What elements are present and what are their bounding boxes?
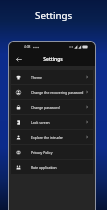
staticText: Theme [31, 75, 42, 80]
button[interactable]: Rate application [11, 160, 93, 174]
staticText: Lock screen [31, 120, 50, 125]
button[interactable]: Back [13, 54, 24, 65]
button[interactable]: Change the recovering password [11, 85, 93, 99]
staticText: Rate application [31, 165, 57, 170]
button[interactable]: Privacy Policy [11, 145, 93, 159]
button[interactable]: Lock screen [11, 115, 93, 129]
button[interactable]: Explore the intruder [11, 130, 93, 144]
button[interactable]: Change password [11, 100, 93, 114]
staticText: Settings [43, 56, 63, 63]
staticText: Settings [35, 9, 73, 22]
staticText: Change the recovering password [31, 90, 84, 95]
staticText: Change password [31, 105, 60, 110]
button[interactable]: Theme [11, 70, 93, 84]
staticText: Explore the intruder [31, 135, 64, 140]
staticText: Privacy Policy [31, 150, 53, 155]
staticText: 4:08 [24, 45, 31, 49]
